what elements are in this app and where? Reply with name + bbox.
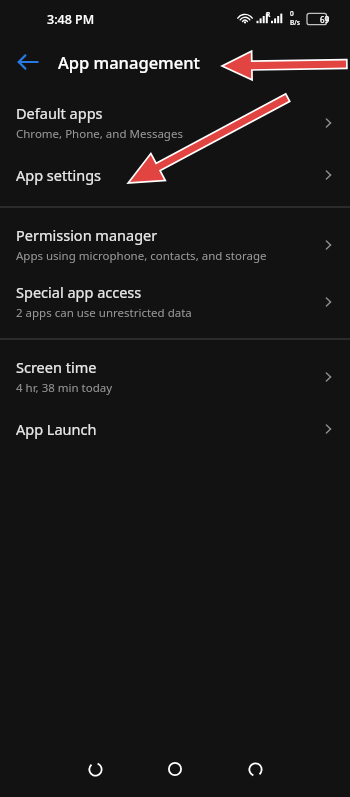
button[interactable]: Screen time [0,348,350,405]
button[interactable]: App Launch [0,405,350,452]
staticText: B/s [290,18,300,27]
button[interactable]: Back [233,747,277,791]
staticText: 69 [320,14,330,25]
staticText: App settings [16,165,102,185]
staticText: R [266,10,271,19]
staticText: Screen time [16,357,97,377]
staticText: App Launch [16,419,97,439]
staticText: 0 [290,9,294,18]
staticText: Special app access [16,282,142,302]
staticText: Chrome, Phone, and Messages [16,126,183,142]
button[interactable]: App settings [0,151,350,198]
button[interactable]: Recent apps [73,747,117,791]
button[interactable]: Home [153,747,197,791]
staticText: Apps using microphone, contacts, and sto… [16,248,267,264]
button[interactable]: Back [8,42,48,82]
staticText: 3:48 PM [47,11,95,28]
staticText: 2 apps can use unrestricted data [16,305,192,321]
button[interactable]: Permission manager [0,216,350,273]
staticText: App management [58,51,200,73]
staticText: 4 hr, 38 min today [16,380,113,396]
staticText: Permission manager [16,225,158,245]
staticText: Default apps [16,103,103,123]
button[interactable]: Default apps [0,94,350,151]
button[interactable]: Special app access [0,273,350,330]
